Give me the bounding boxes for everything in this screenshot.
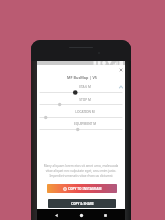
staticText: ETA 6 M [41, 85, 129, 89]
button[interactable] [37, 115, 125, 120]
button[interactable]: COPY & SHARE [48, 199, 116, 208]
button[interactable] [37, 102, 125, 107]
staticText: LOCATION M [41, 110, 129, 114]
staticText: STOP M [41, 98, 129, 102]
staticText: EQUIPMENT M [41, 122, 129, 126]
button[interactable]: Home [77, 211, 86, 220]
button[interactable]: Close [118, 67, 124, 73]
button[interactable] [37, 90, 125, 95]
staticText: Many aliquam lorem etos sit amet urna, m… [41, 164, 121, 178]
staticText: MF BusMap | V5 [38, 75, 126, 80]
button[interactable]: Back [52, 211, 61, 220]
button[interactable]: Expand [118, 84, 124, 90]
staticText: COPY TO INSTAGRAM [68, 187, 102, 191]
button[interactable] [37, 127, 125, 132]
staticText: COPY & SHARE [71, 202, 94, 206]
button[interactable]: COPY TO INSTAGRAM [47, 184, 117, 193]
button[interactable]: Recent apps [101, 211, 110, 220]
